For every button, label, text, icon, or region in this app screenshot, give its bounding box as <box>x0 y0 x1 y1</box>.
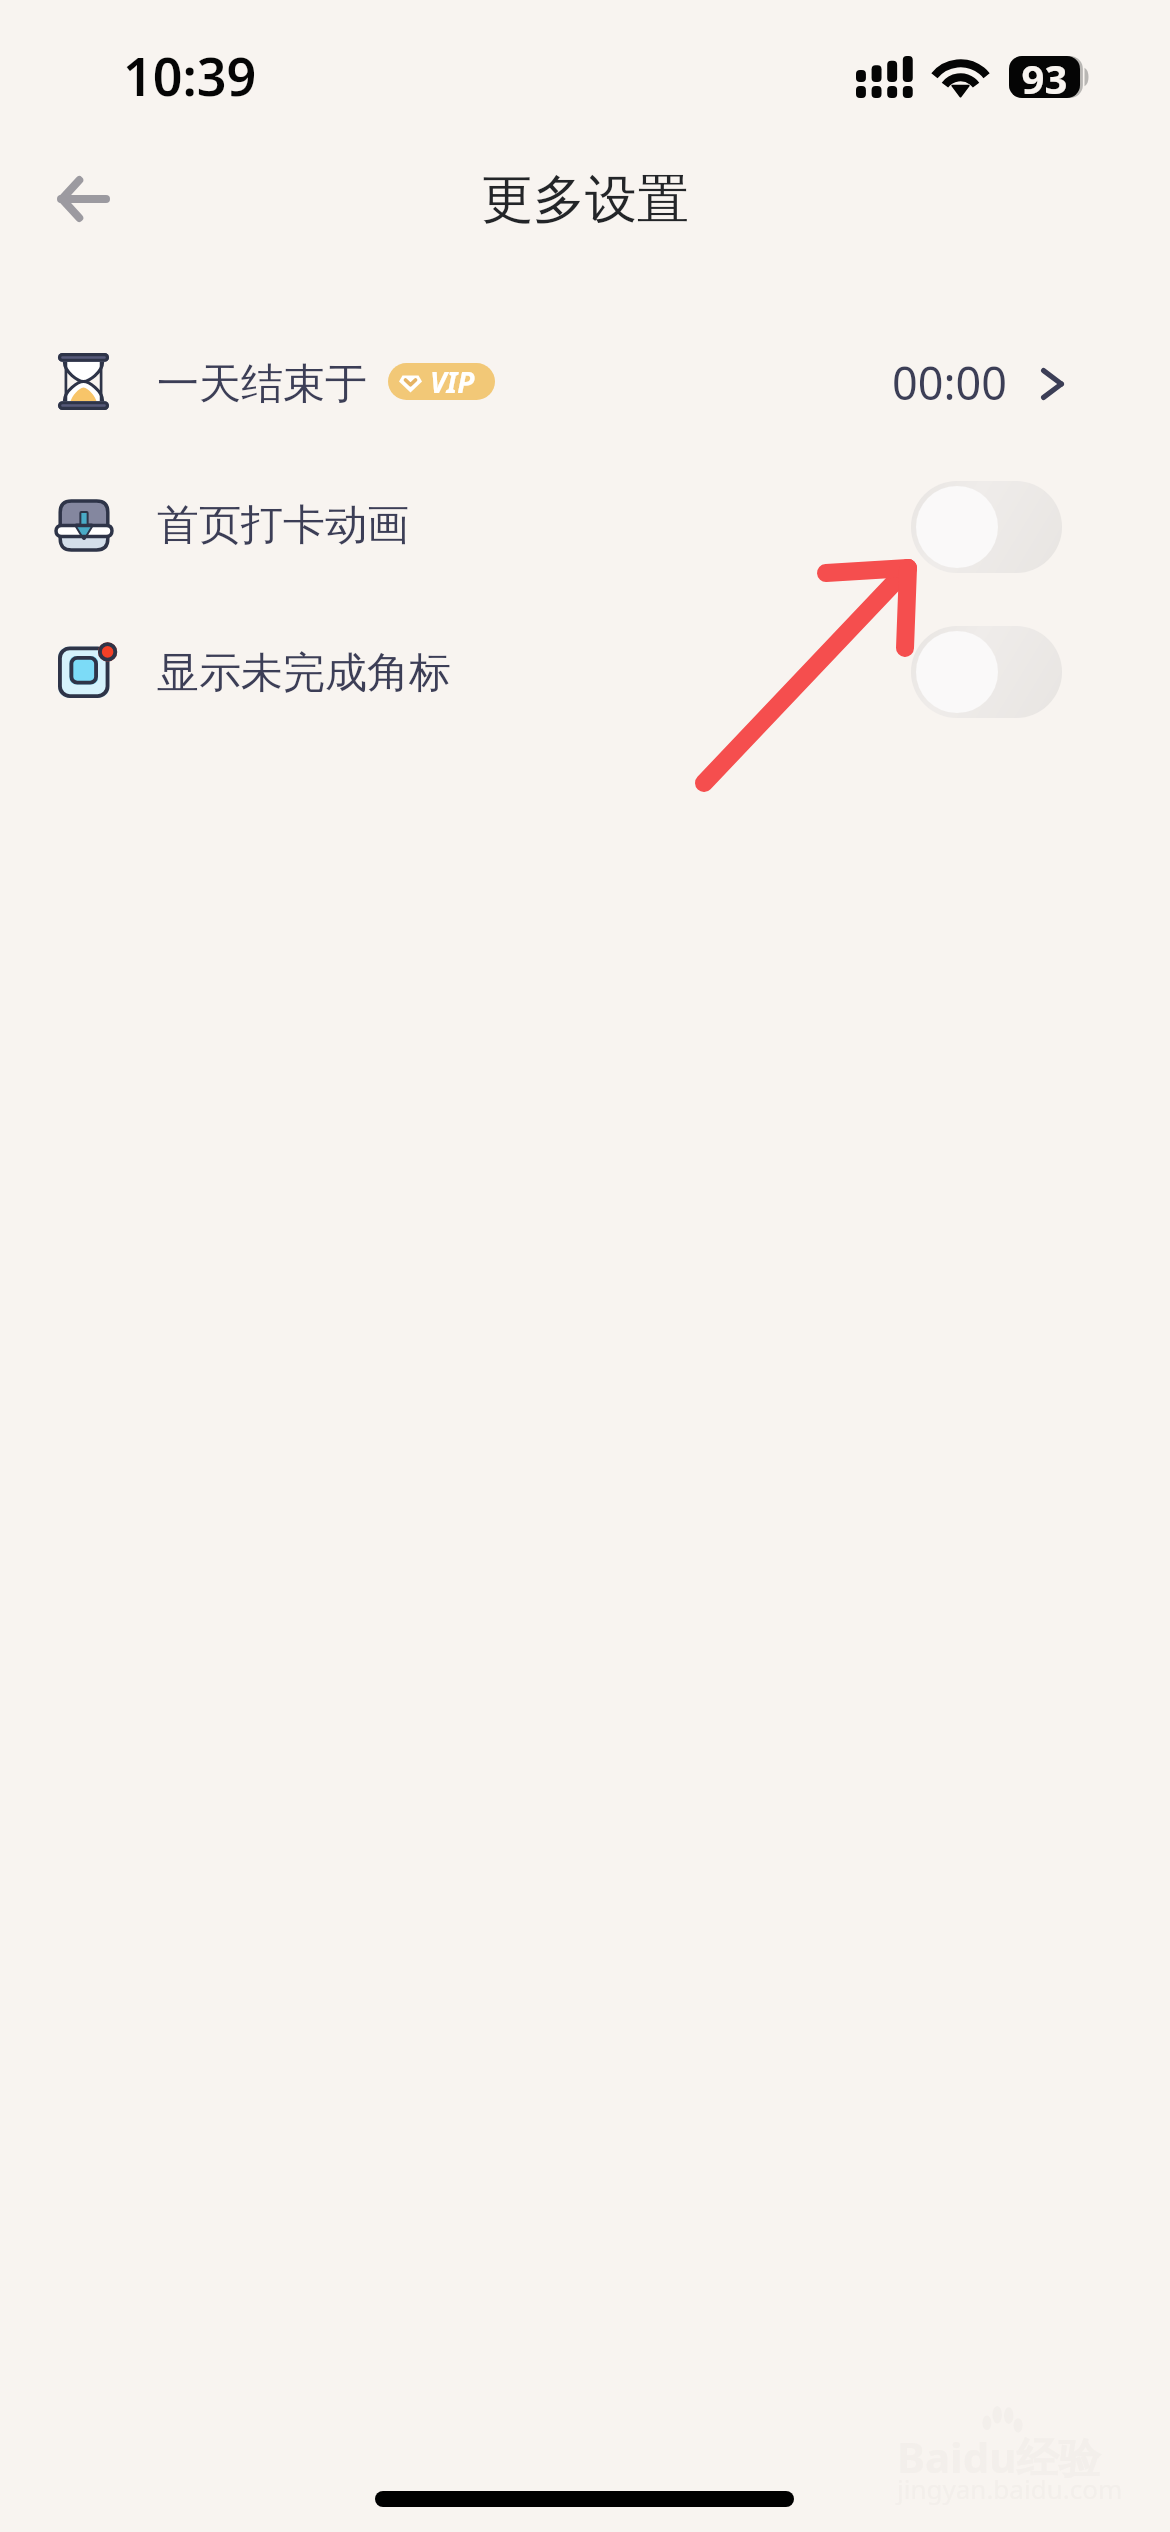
staticText: VIP <box>430 363 475 400</box>
staticText: 显示未完成角标 <box>157 647 451 700</box>
button[interactable]: 一天结束于 <box>0 308 1170 454</box>
button[interactable]: Toggle <box>911 626 1062 718</box>
staticText: 93 <box>1009 51 1080 105</box>
button[interactable]: 显示未完成角标 <box>0 599 1170 745</box>
button[interactable]: Back <box>28 143 138 253</box>
staticText: 首页打卡动画 <box>157 499 409 552</box>
staticText: 10:39 <box>123 40 257 111</box>
button[interactable]: Toggle <box>911 481 1062 573</box>
staticText: 更多设置 <box>0 167 1170 233</box>
staticText: 00:00 <box>892 352 1008 413</box>
button[interactable]: 首页打卡动画 <box>0 454 1170 600</box>
staticText: 一天结束于 <box>157 358 367 411</box>
